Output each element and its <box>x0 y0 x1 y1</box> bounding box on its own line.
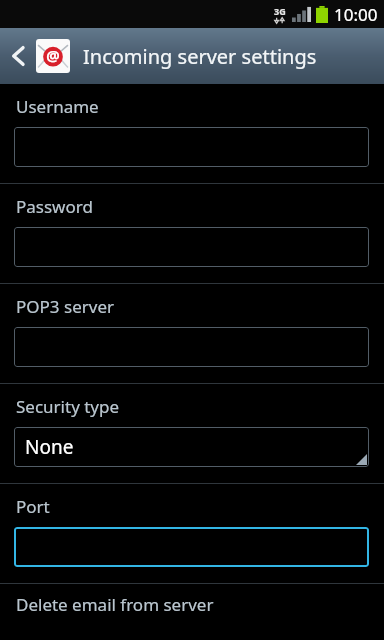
button[interactable]: Username <box>0 84 384 183</box>
staticText: 10:00 <box>334 3 378 26</box>
staticText: Security type <box>16 395 120 418</box>
staticText: Incoming server settings <box>83 43 317 70</box>
staticText: Port <box>16 495 50 518</box>
staticText: POP3 server <box>16 295 114 318</box>
staticText: 3G <box>274 5 286 17</box>
staticText: None <box>25 434 74 460</box>
button[interactable]: Delete email from server <box>0 584 384 624</box>
button[interactable]: Back <box>0 28 36 84</box>
button[interactable]: Security type <box>0 384 384 483</box>
button[interactable]: Port <box>0 484 384 583</box>
staticText: Password <box>16 195 93 218</box>
button[interactable]: POP3 server <box>0 284 384 383</box>
staticText: @ <box>46 45 60 65</box>
staticText: Delete email from server <box>16 593 214 616</box>
button[interactable]: Password <box>0 184 384 283</box>
staticText: Username <box>16 95 99 118</box>
